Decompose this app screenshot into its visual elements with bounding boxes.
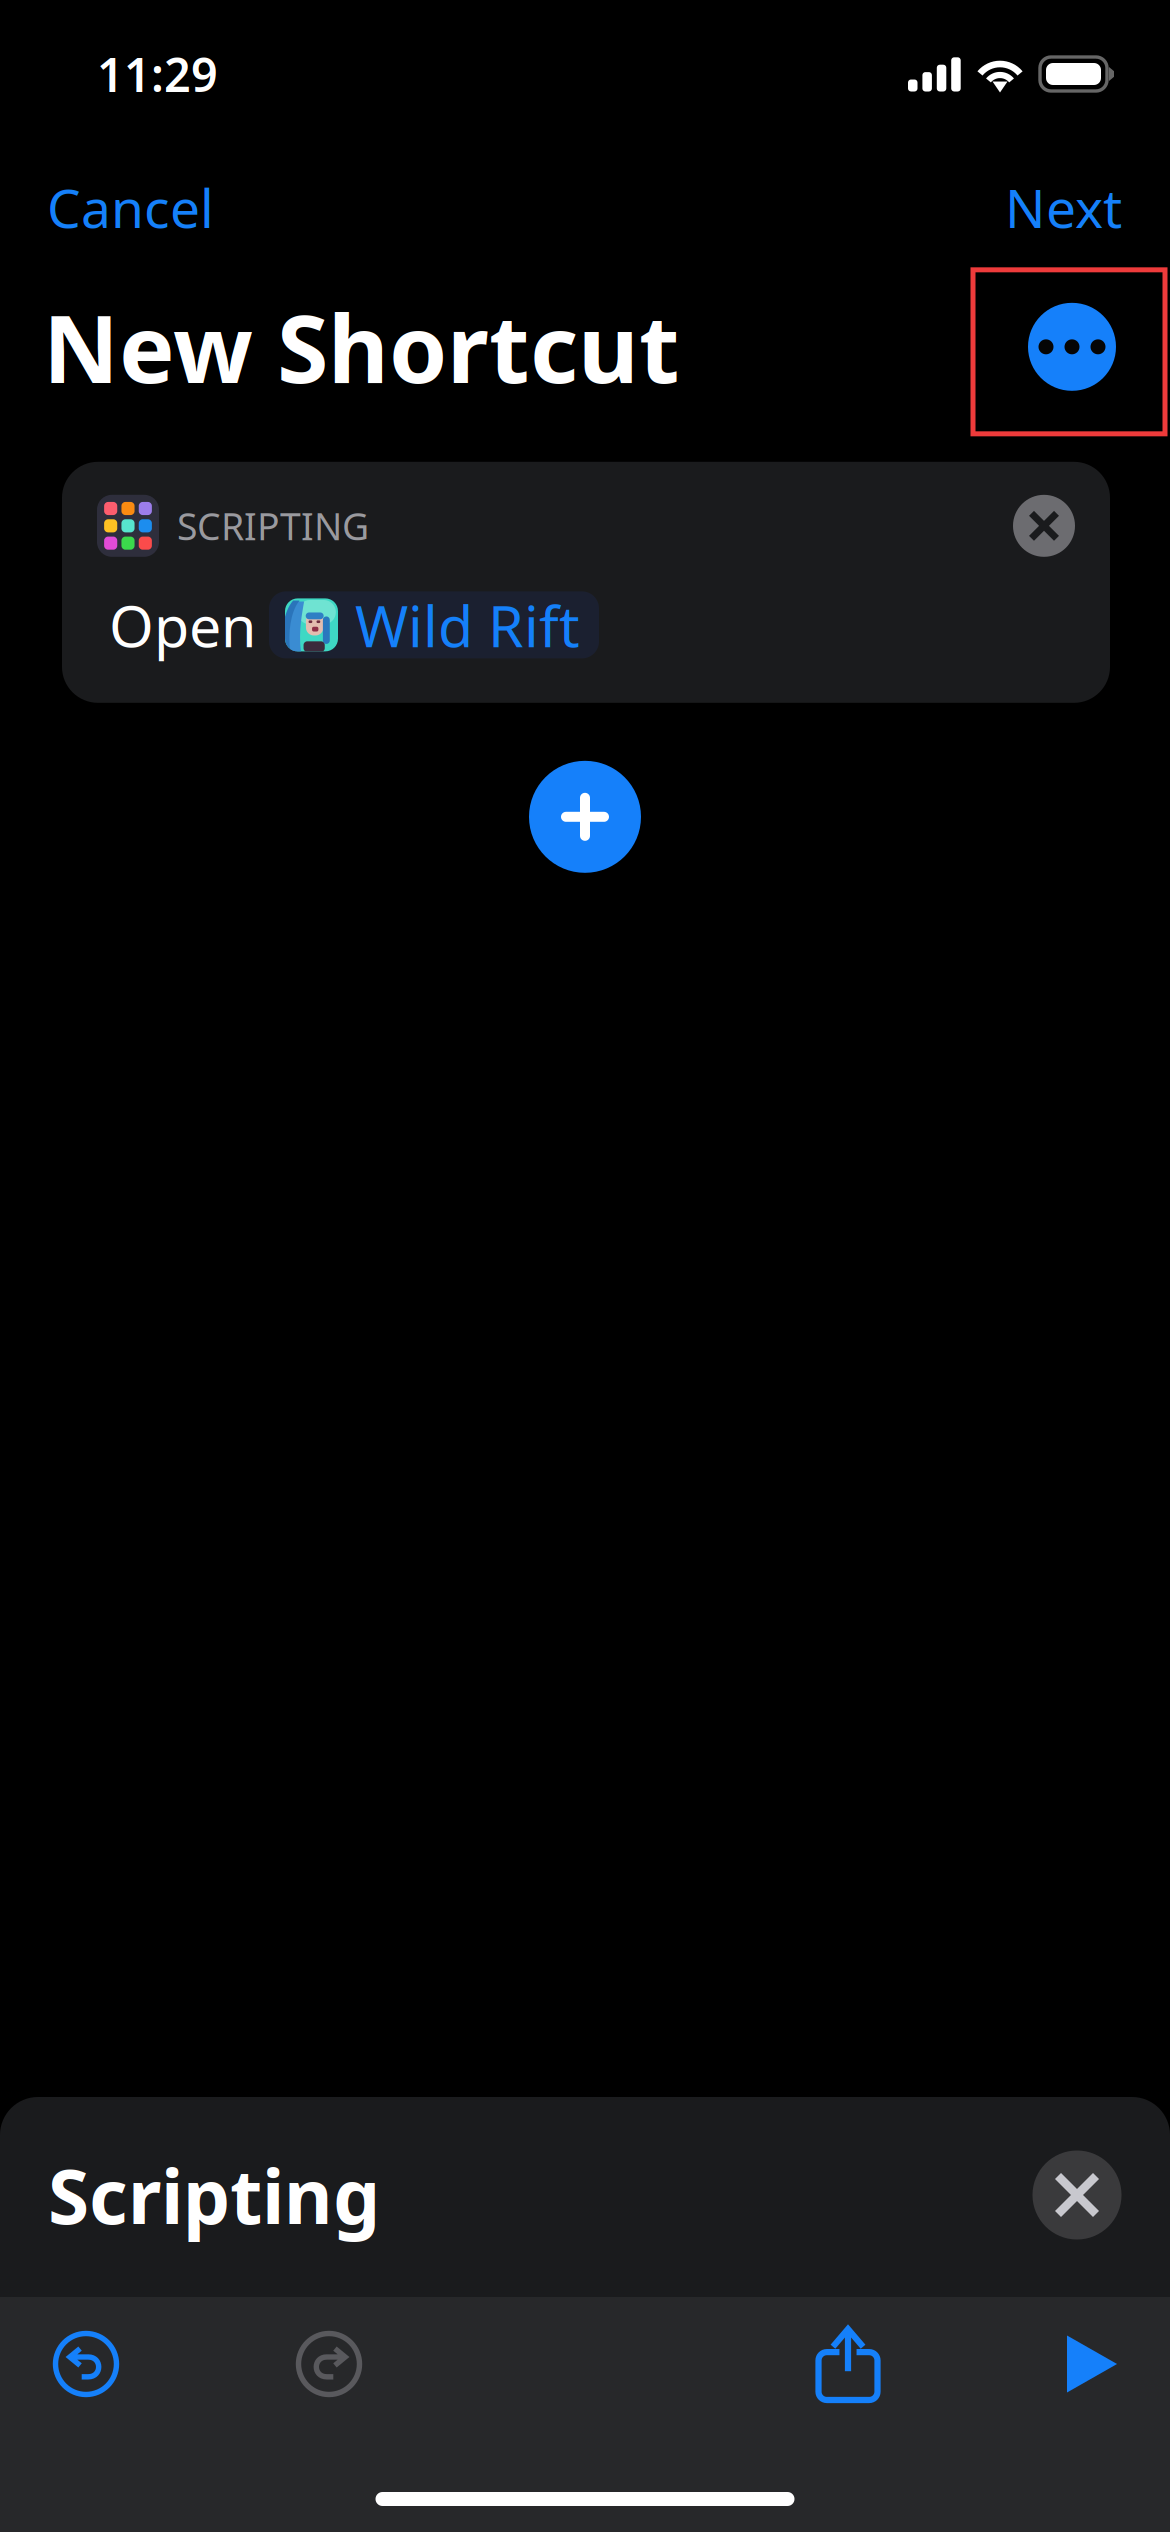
button[interactable]: Close xyxy=(1022,2140,1132,2250)
staticText: Cancel xyxy=(47,172,214,243)
button[interactable]: Run shortcut xyxy=(1043,2315,1141,2413)
staticText: Scripting xyxy=(48,2145,380,2245)
staticText: 11:29 xyxy=(97,43,218,105)
button[interactable]: Redo xyxy=(280,2315,378,2413)
staticText: Wild Rift xyxy=(355,587,580,663)
staticText: Open xyxy=(109,587,256,663)
button[interactable]: Next xyxy=(999,160,1128,255)
staticText: SCRIPTING xyxy=(177,501,369,551)
button[interactable]: Remove action xyxy=(999,481,1089,571)
button[interactable]: Add action xyxy=(515,747,655,887)
button[interactable]: Undo xyxy=(37,2315,135,2413)
staticText: Next xyxy=(1005,172,1122,243)
button[interactable]: More options xyxy=(974,263,1170,431)
staticText: New Shortcut xyxy=(43,285,680,409)
button[interactable]: Share xyxy=(799,2315,897,2413)
button[interactable]: Cancel xyxy=(41,160,220,255)
